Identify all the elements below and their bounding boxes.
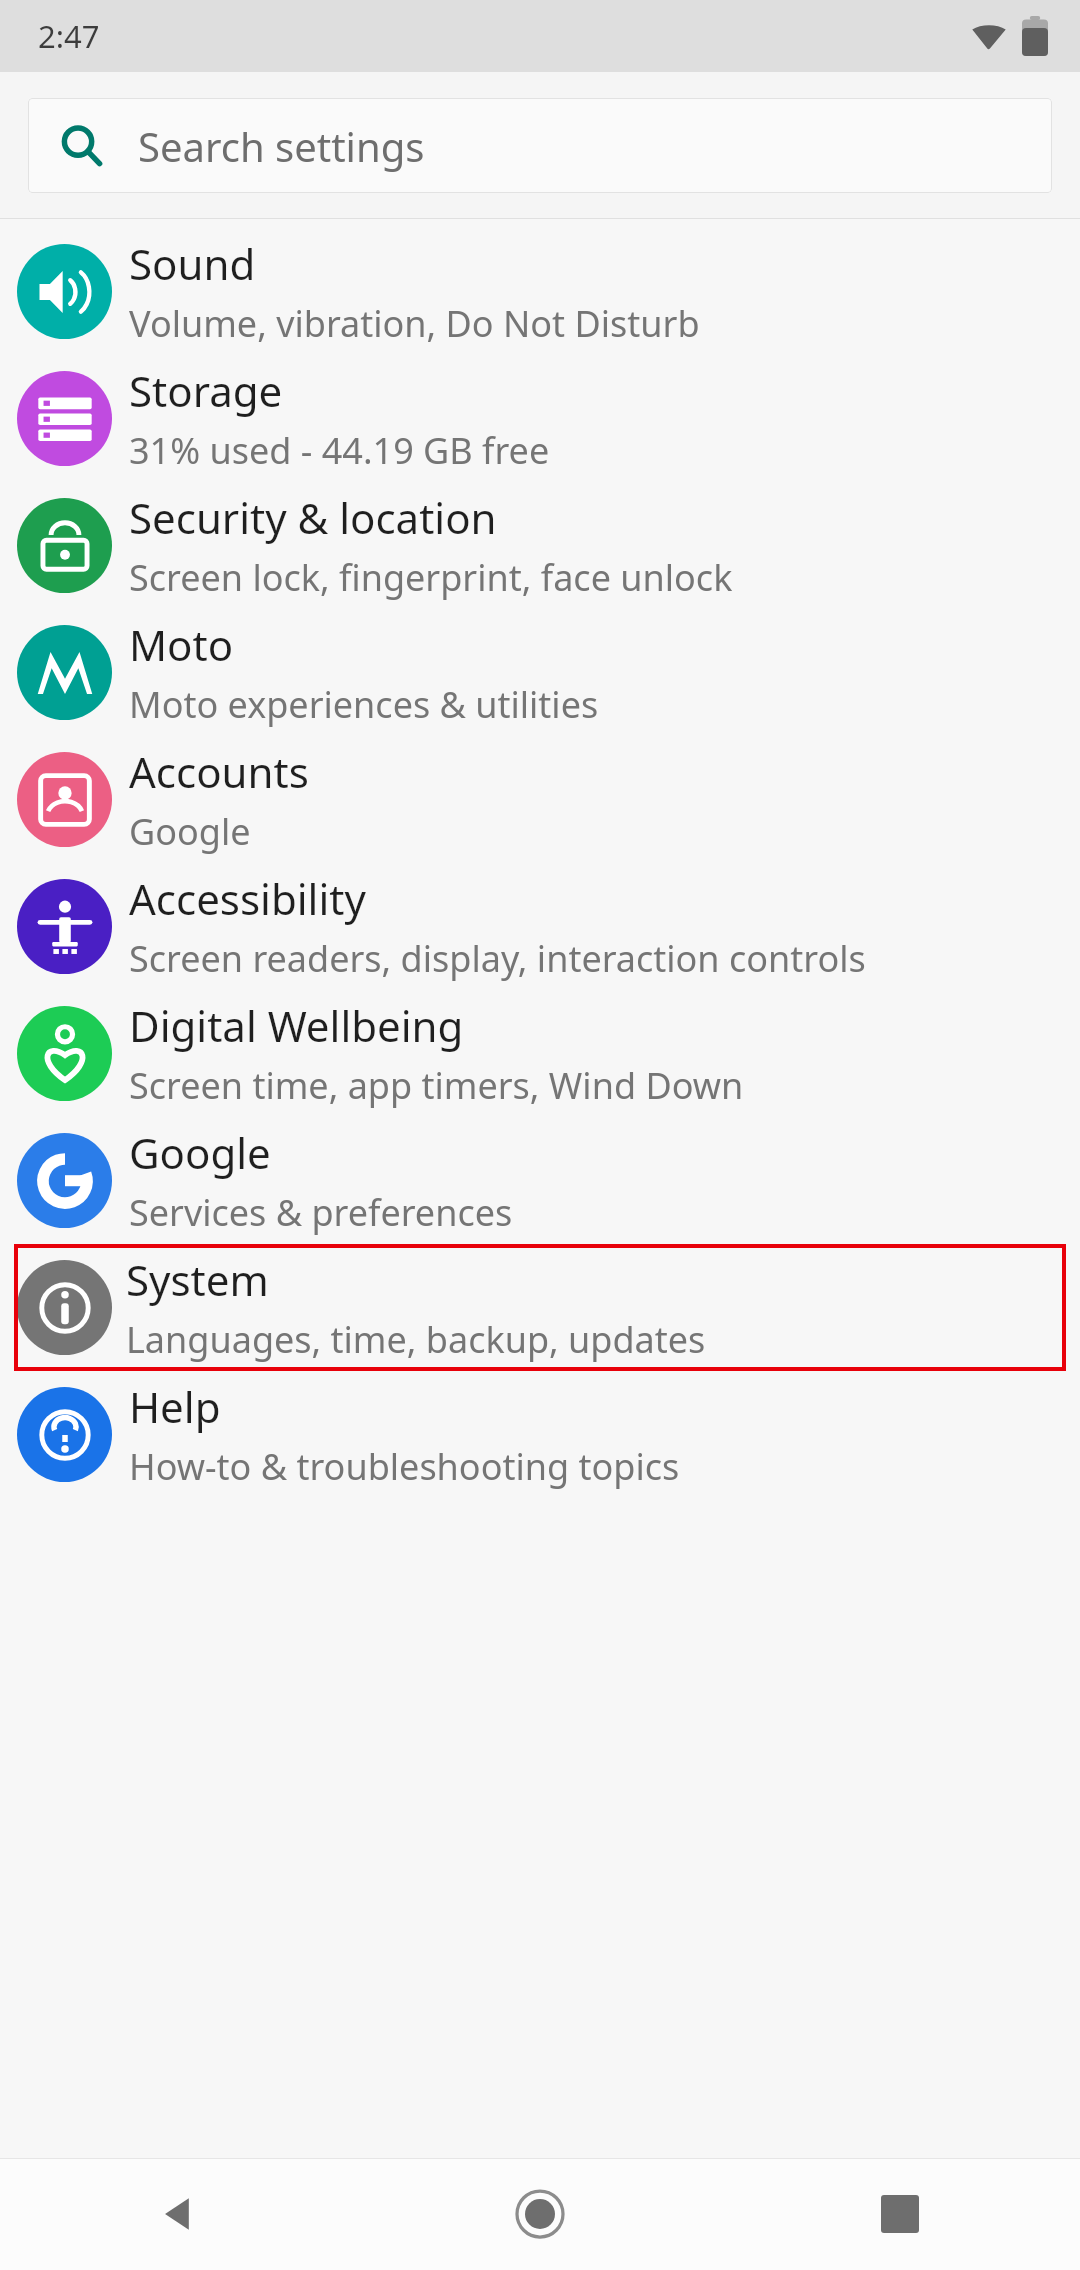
staticText: 2:47 (38, 15, 100, 57)
button[interactable]: Google (0, 1117, 1080, 1244)
button[interactable]: Back (0, 2158, 360, 2270)
staticText: Languages, time, backup, updates (126, 1315, 706, 1364)
staticText: Screen lock, fingerprint, face unlock (129, 553, 733, 602)
button[interactable]: Recent apps (720, 2158, 1080, 2270)
button[interactable]: Digital Wellbeing (0, 990, 1080, 1117)
staticText: How-to & troubleshooting topics (129, 1442, 680, 1491)
button[interactable]: Security & location (0, 482, 1080, 609)
staticText: Moto (129, 616, 234, 673)
staticText: Volume, vibration, Do Not Disturb (129, 299, 700, 348)
staticText: Services & preferences (129, 1188, 513, 1237)
staticText: Search settings (138, 119, 425, 173)
staticText: Sound (129, 235, 256, 292)
button[interactable]: Sound (0, 228, 1080, 355)
button[interactable]: Help (0, 1371, 1080, 1498)
staticText: Google (129, 1124, 271, 1181)
staticText: Accounts (129, 743, 309, 800)
button[interactable]: Accessibility (0, 863, 1080, 990)
staticText: System (126, 1251, 269, 1308)
button[interactable]: Moto (0, 609, 1080, 736)
staticText: Digital Wellbeing (129, 997, 464, 1054)
staticText: Google (129, 807, 251, 856)
staticText: Help (129, 1378, 221, 1435)
staticText: 31% used - 44.19 GB free (129, 426, 550, 475)
staticText: Moto experiences & utilities (129, 680, 599, 729)
staticText: Screen readers, display, interaction con… (129, 934, 866, 983)
staticText: Security & location (129, 489, 497, 546)
staticText: Accessibility (129, 870, 366, 927)
button[interactable]: Storage (0, 355, 1080, 482)
button[interactable]: Accounts (0, 736, 1080, 863)
button[interactable]: Home (360, 2158, 720, 2270)
button[interactable]: System (0, 1244, 1080, 1371)
staticText: Screen time, app timers, Wind Down (129, 1061, 744, 1110)
button[interactable]: Search settings (28, 98, 1052, 193)
staticText: Storage (129, 362, 283, 419)
